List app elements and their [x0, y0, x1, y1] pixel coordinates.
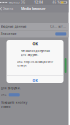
- button[interactable]: Отмена: [0, 5, 15, 12]
- button[interactable]: Входные данные: [0, 23, 68, 30]
- staticText: Покажите кнопку отзыва: [1, 101, 27, 109]
- staticText: OK: [32, 78, 37, 83]
- staticText: Значение: [1, 32, 17, 36]
- staticText: 12:04: [34, 1, 43, 4]
- staticText: Входные данные: [1, 24, 27, 28]
- staticText: URL:: [1, 93, 7, 97]
- staticText: для загрузки.: [1, 86, 21, 90]
- staticText: Media browser: [21, 6, 46, 11]
- staticText: 3G: [19, 1, 25, 4]
- staticText: OK: [32, 41, 37, 46]
- staticText: URL: http://t.co/kXrQBVEFTT? id=4F1JK: [17, 60, 53, 67]
- staticText: 46 %: [52, 1, 60, 4]
- button[interactable]: Значение: [0, 30, 68, 37]
- button[interactable]: Открыть ссылку: [9, 93, 20, 96]
- staticText: Нет ссылок доступных для загрузки.: [20, 49, 49, 56]
- staticText: Отмена: [3, 7, 14, 11]
- button[interactable]: OK: [6, 76, 63, 85]
- staticText: Сл... хот ...: [50, 24, 66, 28]
- staticText: MTS RUS: [8, 1, 19, 4]
